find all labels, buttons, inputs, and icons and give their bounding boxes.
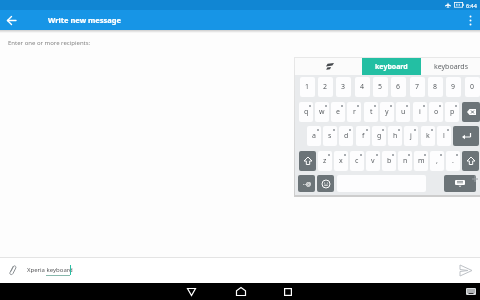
- button[interactable]: 7: [410, 77, 425, 97]
- staticText: w: [319, 107, 325, 117]
- staticText: q: [304, 107, 309, 117]
- staticText: 8: [433, 82, 438, 92]
- staticText: n: [403, 156, 408, 166]
- staticText: g: [377, 131, 382, 141]
- staticText: 0: [470, 82, 475, 92]
- button[interactable]: [463, 283, 478, 300]
- button[interactable]: 4: [355, 77, 370, 97]
- staticText: keyboard: [375, 62, 408, 72]
- button[interactable]: b: [382, 151, 396, 171]
- button[interactable]: s: [323, 126, 337, 146]
- button[interactable]: [299, 151, 316, 171]
- staticText: 6: [396, 82, 401, 92]
- staticText: x: [339, 156, 343, 166]
- staticText: 1: [305, 82, 310, 92]
- button[interactable]: i: [413, 102, 427, 122]
- staticText: u: [401, 107, 406, 117]
- staticText: keyboards: [434, 62, 468, 72]
- button[interactable]: 3: [336, 77, 351, 97]
- staticText: o: [434, 107, 439, 117]
- staticText: Write new message: [48, 15, 122, 25]
- button[interactable]: x: [334, 151, 348, 171]
- button[interactable]: d: [339, 126, 353, 146]
- button[interactable]: [460, 265, 472, 276]
- staticText: i: [419, 107, 421, 117]
- staticText: f: [362, 131, 365, 141]
- button[interactable]: keyboard: [362, 58, 421, 75]
- staticText: l: [443, 131, 445, 141]
- button[interactable]: 1: [300, 77, 315, 97]
- button[interactable]: [462, 151, 479, 171]
- staticText: Enter one or more recipients:: [8, 39, 91, 47]
- staticText: c: [355, 156, 359, 166]
- staticText: v: [371, 156, 375, 166]
- staticText: .: [452, 156, 454, 166]
- staticText: s: [328, 131, 332, 141]
- staticText: 5: [378, 82, 383, 92]
- staticText: r: [353, 107, 356, 117]
- staticText: 6:44: [466, 2, 477, 9]
- button[interactable]: k: [421, 126, 435, 146]
- button[interactable]: [7, 264, 16, 275]
- staticText: e: [336, 107, 340, 117]
- button[interactable]: q: [299, 102, 313, 122]
- button[interactable]: [281, 283, 295, 300]
- staticText: a: [312, 131, 316, 141]
- button[interactable]: keyboards: [421, 58, 480, 75]
- staticText: k: [426, 131, 430, 141]
- button[interactable]: g: [372, 126, 386, 146]
- staticText: 3: [341, 82, 346, 92]
- button[interactable]: o: [429, 102, 443, 122]
- button[interactable]: [453, 126, 479, 146]
- button[interactable]: t: [364, 102, 378, 122]
- staticText: Xperia keyboard: [27, 266, 73, 274]
- button[interactable]: w: [315, 102, 329, 122]
- button[interactable]: n: [398, 151, 412, 171]
- button[interactable]: 6: [391, 77, 406, 97]
- button[interactable]: r: [347, 102, 361, 122]
- staticText: ··@: [303, 180, 311, 187]
- button[interactable]: h: [388, 126, 402, 146]
- button[interactable]: j: [404, 126, 418, 146]
- button[interactable]: v: [366, 151, 380, 171]
- staticText: b: [387, 156, 392, 166]
- button[interactable]: ··@: [298, 175, 315, 192]
- staticText: z: [323, 156, 327, 166]
- button[interactable]: [444, 175, 476, 192]
- staticText: 4: [360, 82, 365, 92]
- button[interactable]: a: [307, 126, 321, 146]
- staticText: m: [418, 156, 425, 166]
- button[interactable]: ,: [430, 151, 444, 171]
- staticText: t: [370, 107, 373, 117]
- button[interactable]: [184, 283, 199, 300]
- button[interactable]: e: [331, 102, 345, 122]
- staticText: ,: [436, 156, 438, 166]
- staticText: h: [393, 131, 398, 141]
- button[interactable]: [233, 283, 248, 300]
- button[interactable]: m: [414, 151, 428, 171]
- button[interactable]: l: [437, 126, 451, 146]
- staticText: 7: [415, 82, 420, 92]
- staticText: d: [344, 131, 349, 141]
- button[interactable]: .: [446, 151, 460, 171]
- button[interactable]: f: [356, 126, 370, 146]
- staticText: j: [410, 131, 412, 141]
- button[interactable]: p: [445, 102, 459, 122]
- staticText: 9: [451, 82, 456, 92]
- button[interactable]: c: [350, 151, 364, 171]
- button[interactable]: [462, 10, 478, 30]
- button[interactable]: [2, 10, 20, 30]
- button[interactable]: 5: [373, 77, 388, 97]
- staticText: y: [385, 107, 389, 117]
- staticText: p: [450, 107, 455, 117]
- button[interactable]: 0: [465, 77, 480, 97]
- button[interactable]: [317, 175, 334, 192]
- button[interactable]: [462, 102, 480, 122]
- button[interactable]: 8: [428, 77, 443, 97]
- button[interactable]: u: [396, 102, 410, 122]
- button[interactable]: 2: [318, 77, 333, 97]
- button[interactable]: 9: [446, 77, 461, 97]
- button[interactable]: y: [380, 102, 394, 122]
- button[interactable]: z: [318, 151, 332, 171]
